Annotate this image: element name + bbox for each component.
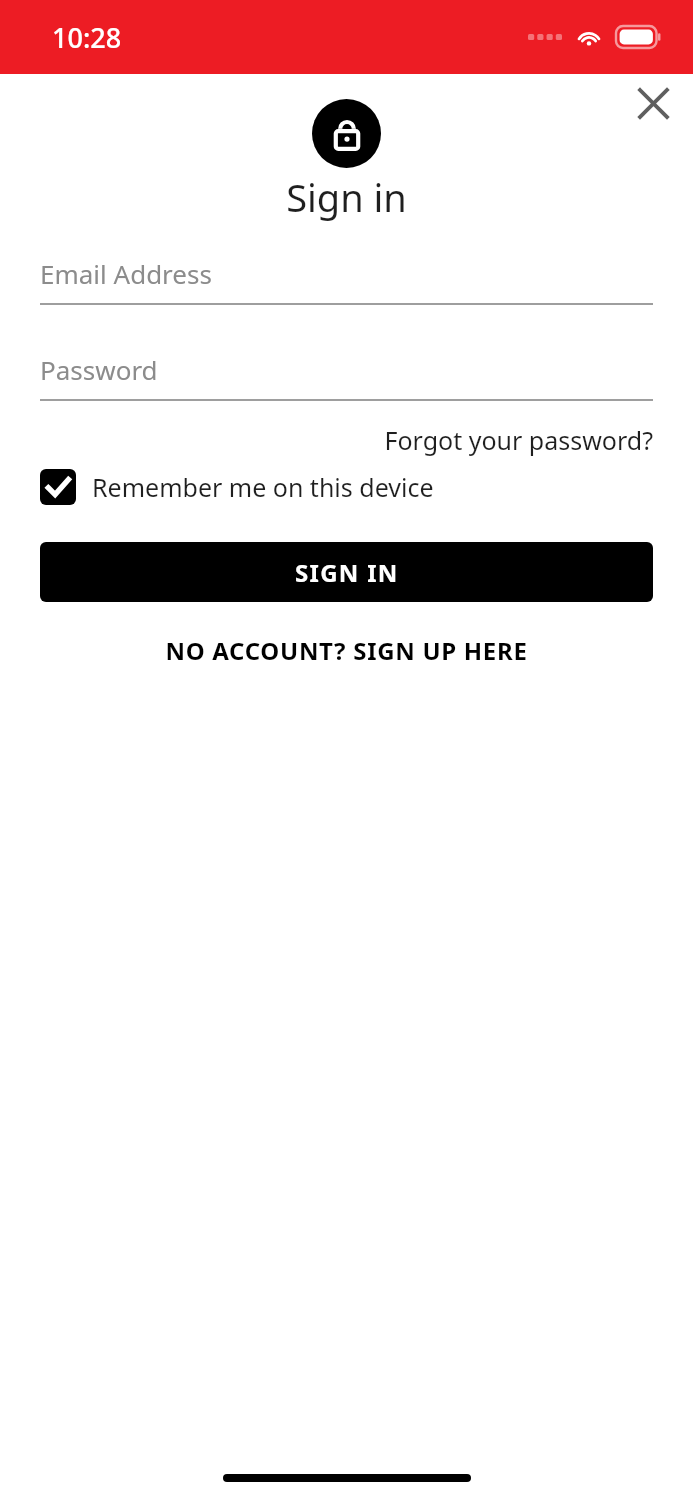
button[interactable]: Password: [40, 352, 653, 401]
staticText: Remember me on this device: [92, 470, 434, 504]
button[interactable]: Forgot your password?: [40, 423, 653, 457]
button[interactable]: Remember me on this device: [40, 469, 434, 505]
staticText: SIGN IN: [295, 556, 399, 589]
staticText: Password: [40, 352, 158, 387]
button[interactable]: Close: [631, 81, 675, 125]
button[interactable]: Email Address: [40, 256, 653, 305]
button[interactable]: NO ACCOUNT? SIGN UP HERE: [40, 634, 653, 667]
staticText: Sign in: [0, 171, 693, 223]
button[interactable]: SIGN IN: [40, 542, 653, 602]
staticText: Email Address: [40, 256, 212, 291]
staticText: 10:28: [52, 19, 122, 56]
